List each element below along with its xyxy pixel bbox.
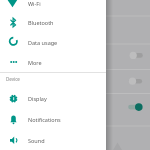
button[interactable]: Notifications bbox=[0, 109, 106, 129]
button[interactable]: Wi-Fi bbox=[0, 0, 106, 13]
button[interactable]: Sound bbox=[0, 130, 106, 150]
staticText: Display bbox=[28, 95, 47, 102]
staticText: More bbox=[28, 59, 42, 66]
button[interactable] bbox=[106, 93, 150, 118]
staticText: Bluetooth bbox=[28, 19, 54, 26]
staticText: Wi-Fi bbox=[28, 0, 41, 7]
button[interactable]: Data usage bbox=[0, 32, 106, 52]
button[interactable]: Bluetooth bbox=[0, 12, 106, 32]
staticText: Sound bbox=[28, 137, 45, 144]
button[interactable] bbox=[106, 44, 150, 69]
staticText: Device bbox=[6, 76, 20, 82]
button[interactable]: Display bbox=[0, 88, 106, 108]
staticText: Data usage bbox=[28, 39, 58, 46]
button[interactable]: More bbox=[0, 52, 106, 72]
button[interactable] bbox=[106, 69, 150, 94]
staticText: Notifications bbox=[28, 116, 61, 123]
